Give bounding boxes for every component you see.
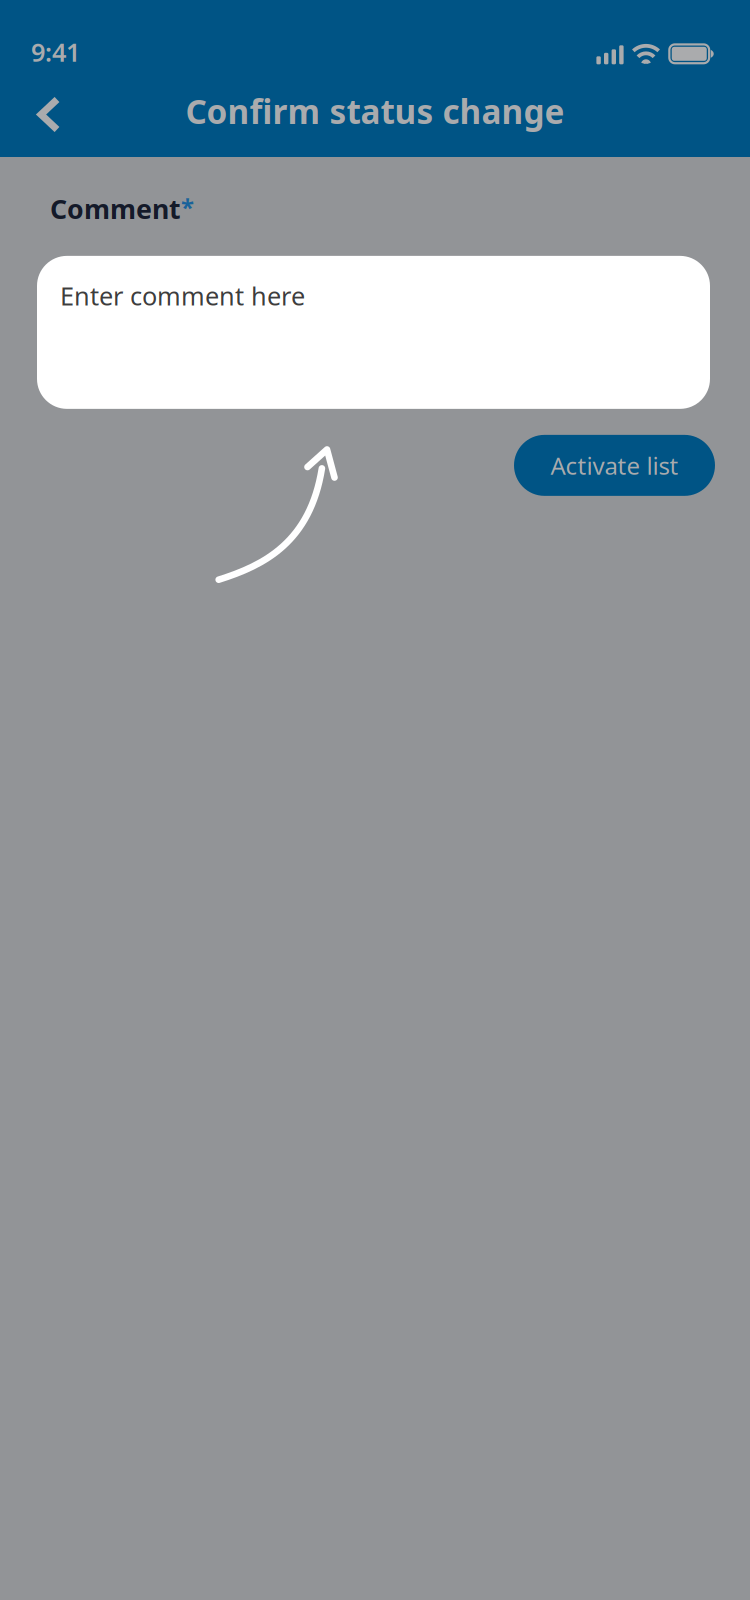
staticText: Activate list xyxy=(550,449,678,481)
button[interactable]: Back xyxy=(16,81,82,147)
staticText: Comment xyxy=(50,191,181,226)
staticText: 9:41 xyxy=(31,35,80,69)
staticText: * xyxy=(181,191,194,223)
button[interactable]: Activate list xyxy=(514,435,715,496)
staticText: Enter comment here xyxy=(60,279,305,312)
button[interactable]: Enter comment here xyxy=(37,256,710,409)
staticText: Confirm status change xyxy=(185,89,564,133)
